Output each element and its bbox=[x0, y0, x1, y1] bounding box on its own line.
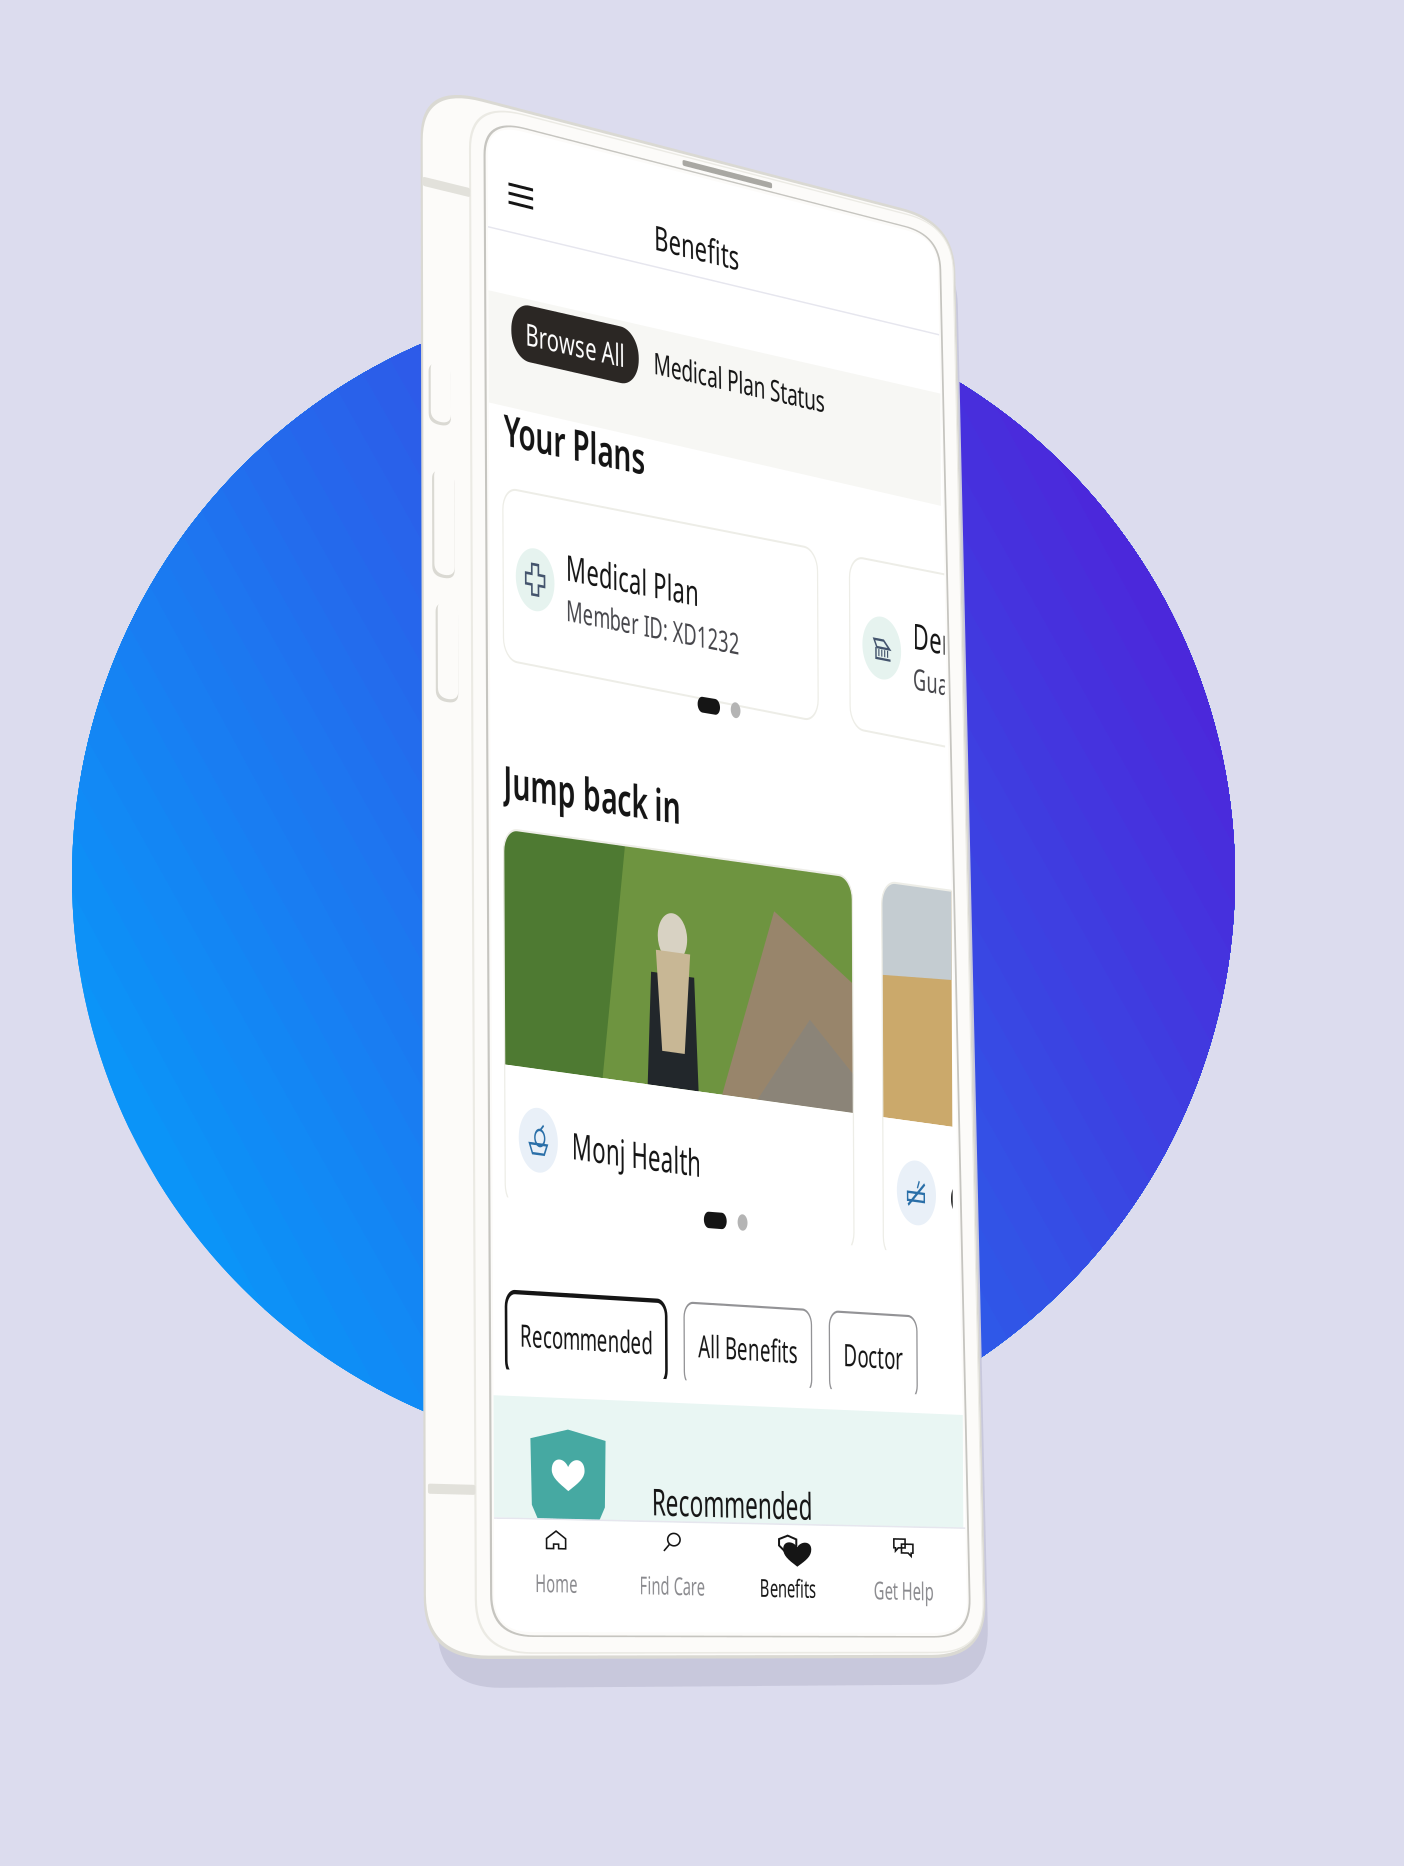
button[interactable]: All Benefits bbox=[685, 1289, 813, 1340]
staticText: Doctor bbox=[845, 1302, 905, 1327]
staticText: Find Care bbox=[639, 1546, 704, 1566]
staticText: Dental bbox=[926, 510, 997, 540]
button[interactable]: Home bbox=[498, 1522, 614, 1566]
button[interactable]: Browse All bbox=[511, 301, 637, 338]
staticText: Browse All bbox=[525, 307, 623, 333]
staticText: Your Plans bbox=[503, 400, 645, 437]
staticText: Recommended bbox=[652, 1476, 814, 1506]
staticText: Home bbox=[535, 1546, 577, 1566]
staticText: Medical Plan bbox=[568, 510, 705, 540]
staticText: Benefits bbox=[759, 1546, 815, 1566]
button[interactable]: Get Help bbox=[845, 1522, 960, 1566]
button[interactable]: Medical Plan bbox=[503, 482, 828, 592]
staticText: All Benefits bbox=[699, 1302, 799, 1327]
button[interactable]: Dental bbox=[861, 482, 1186, 592]
button[interactable]: Quit For Life bbox=[890, 824, 1246, 1058]
button[interactable]: Monj Health bbox=[504, 824, 860, 1058]
button[interactable]: Recommended bbox=[506, 1289, 667, 1340]
staticText: Get Help bbox=[872, 1546, 932, 1566]
staticText: Member ID: XD1232 bbox=[568, 540, 747, 565]
staticText: Medical Plan Status bbox=[653, 342, 833, 369]
button[interactable]: Open menu bbox=[508, 182, 532, 196]
button[interactable]: Medical Plan Status bbox=[602, 919, 802, 946]
staticText: Benefits bbox=[656, 203, 744, 233]
button[interactable]: Benefits bbox=[612, 918, 792, 948]
button[interactable]: Benefits bbox=[729, 1522, 845, 1566]
staticText: Jump back in bbox=[503, 751, 679, 788]
button[interactable]: Doctor bbox=[831, 1289, 919, 1340]
staticText: Guardian bbox=[926, 540, 1007, 565]
staticText: Monj Health bbox=[572, 999, 704, 1029]
staticText: Quit For Life bbox=[958, 999, 1090, 1029]
staticText: Recommended bbox=[520, 1302, 653, 1327]
button[interactable]: Find Care bbox=[614, 1522, 729, 1566]
